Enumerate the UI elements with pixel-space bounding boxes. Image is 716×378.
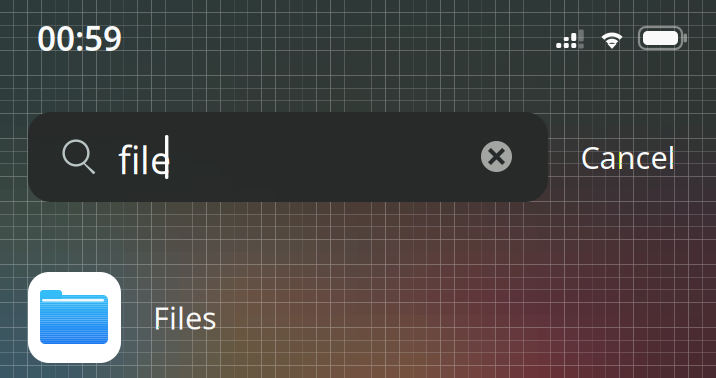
button[interactable]: Cancel xyxy=(570,112,686,202)
staticText: Files xyxy=(153,297,217,338)
button[interactable]: file xyxy=(28,112,548,202)
staticText: file xyxy=(118,135,171,185)
staticText: Cancel xyxy=(580,137,675,177)
staticText: 00:59 xyxy=(37,16,122,60)
button[interactable]: Files xyxy=(28,272,428,363)
